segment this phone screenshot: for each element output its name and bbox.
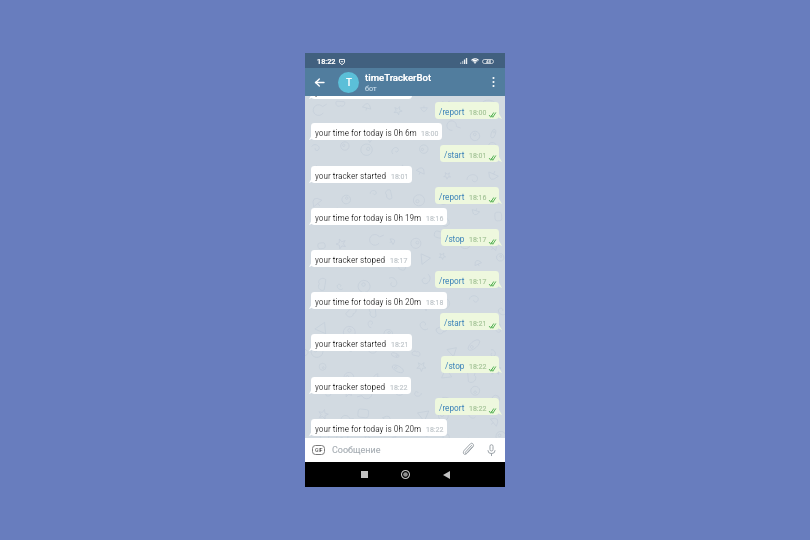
- staticText: /report: [439, 107, 465, 117]
- button[interactable]: your tracker stoped: [311, 250, 411, 267]
- staticText: 18:01: [469, 152, 487, 160]
- staticText: 18:22: [469, 363, 487, 371]
- button[interactable]: your tracker started: [311, 334, 412, 351]
- staticText: your time for today is 0h 19m: [315, 213, 422, 223]
- staticText: your time for today is 0h 20m: [315, 297, 422, 307]
- staticText: /start: [444, 150, 465, 160]
- button[interactable]: your time for today is 0h 20m: [311, 419, 447, 436]
- button[interactable]: your time for today is 0h 20m: [311, 292, 447, 309]
- button[interactable]: Profile photo: [338, 72, 359, 93]
- staticText: GIF: [315, 447, 323, 453]
- staticText: 18:22: [426, 426, 444, 434]
- button[interactable]: your time for today is 0h 6m: [311, 123, 442, 140]
- staticText: 18:01: [391, 173, 409, 181]
- button[interactable]: /report: [435, 271, 499, 288]
- staticText: 18:16: [469, 194, 487, 202]
- staticText: 18:16: [426, 215, 444, 223]
- staticText: your time for today is 0h 20m: [315, 424, 422, 434]
- staticText: /stop: [445, 234, 465, 244]
- staticText: 48: [486, 59, 491, 64]
- staticText: /report: [439, 276, 465, 286]
- staticText: your tracker started: [315, 339, 387, 349]
- staticText: 18:22: [469, 405, 487, 413]
- staticText: timeTrackerBot: [365, 72, 432, 83]
- staticText: /report: [439, 403, 465, 413]
- button[interactable]: /report: [435, 398, 499, 415]
- button[interactable]: GIF: [312, 445, 325, 455]
- staticText: /stop: [445, 361, 465, 371]
- button[interactable]: Home: [385, 462, 426, 487]
- button[interactable]: Attach: [460, 438, 477, 462]
- staticText: your tracker stoped: [315, 255, 386, 265]
- button[interactable]: Voice message: [483, 438, 500, 462]
- staticText: /report: [439, 192, 465, 202]
- button[interactable]: your tracker stoped: [311, 377, 411, 394]
- button[interactable]: More options: [481, 68, 505, 96]
- button[interactable]: Recents: [344, 462, 385, 487]
- staticText: your tracker started: [315, 96, 387, 97]
- staticText: 18:21: [391, 341, 409, 349]
- staticText: 18:17: [469, 278, 487, 286]
- button[interactable]: your time for today is 0h 19m: [311, 208, 447, 225]
- button[interactable]: Back: [305, 68, 333, 96]
- staticText: your tracker stoped: [315, 382, 386, 392]
- button[interactable]: /stop: [441, 229, 499, 246]
- staticText: 18:17: [390, 257, 408, 265]
- staticText: your time for today is 0h 6m: [315, 128, 417, 138]
- button[interactable]: your tracker started: [311, 166, 412, 183]
- staticText: Сообщение: [332, 445, 381, 456]
- button[interactable]: Back: [426, 462, 467, 487]
- staticText: 18:00: [469, 109, 487, 117]
- button[interactable]: /stop: [441, 356, 499, 373]
- staticText: 18:00: [421, 130, 439, 138]
- staticText: 18:17: [469, 236, 487, 244]
- staticText: /start: [444, 318, 465, 328]
- button[interactable]: /start: [440, 145, 499, 162]
- button[interactable]: /report: [435, 102, 499, 119]
- staticText: 18:22: [390, 384, 408, 392]
- staticText: T: [346, 77, 352, 89]
- button[interactable]: your tracker started: [311, 96, 412, 99]
- staticText: 18:21: [469, 320, 487, 328]
- staticText: 18:22: [317, 57, 336, 66]
- button[interactable]: /start: [440, 313, 499, 330]
- button[interactable]: /report: [435, 187, 499, 204]
- staticText: 18:18: [426, 299, 444, 307]
- staticText: your tracker started: [315, 171, 387, 181]
- staticText: бот: [365, 84, 377, 93]
